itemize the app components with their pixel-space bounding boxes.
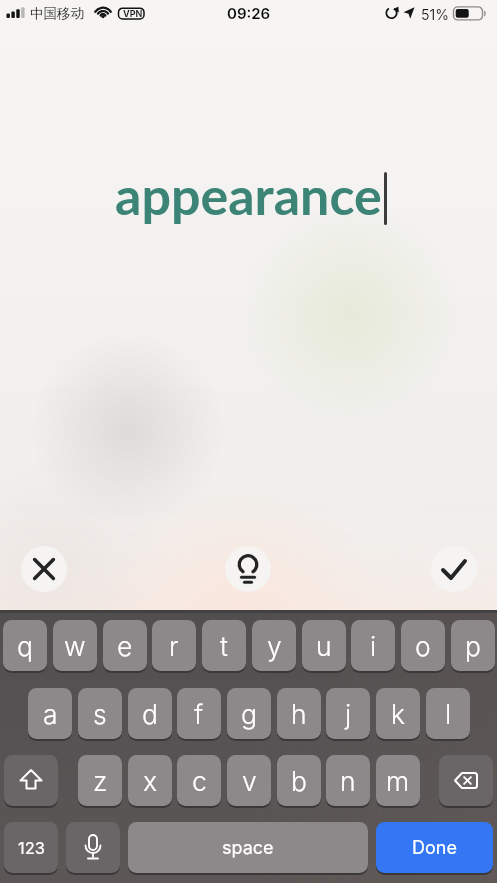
staticText: 51% (421, 6, 449, 23)
staticText: l (445, 698, 452, 730)
staticText: q (17, 630, 33, 662)
staticText: y (267, 630, 282, 662)
button[interactable]: y (252, 620, 296, 671)
staticText: 123 (18, 838, 45, 858)
button[interactable]: t (202, 620, 246, 671)
staticText: v (242, 765, 257, 797)
button[interactable]: v (227, 755, 271, 806)
button[interactable] (225, 546, 271, 592)
staticText: s (93, 698, 107, 730)
button[interactable]: k (376, 688, 420, 739)
staticText: 09:26 (227, 4, 271, 22)
staticText: 中国移动 (30, 5, 84, 22)
button[interactable] (431, 546, 477, 592)
button[interactable] (4, 755, 58, 806)
button[interactable]: m (376, 755, 420, 806)
staticText: h (291, 698, 307, 730)
button[interactable]: j (326, 688, 370, 739)
button[interactable]: p (451, 620, 495, 671)
button[interactable]: x (128, 755, 172, 806)
button[interactable]: l (426, 688, 470, 739)
staticText: p (465, 630, 481, 662)
button[interactable]: g (227, 688, 271, 739)
staticText: z (93, 765, 108, 797)
button[interactable]: 123 (4, 822, 58, 873)
button[interactable]: q (3, 620, 47, 671)
staticText: o (415, 630, 431, 662)
staticText: f (194, 698, 204, 730)
button[interactable]: h (277, 688, 321, 739)
staticText: appearance (115, 164, 382, 224)
button[interactable]: b (277, 755, 321, 806)
staticText: t (220, 630, 228, 662)
button[interactable]: u (302, 620, 346, 671)
button[interactable]: d (128, 688, 172, 739)
staticText: k (391, 698, 406, 730)
button[interactable]: z (78, 755, 122, 806)
button[interactable]: Done (376, 822, 493, 873)
button[interactable] (21, 546, 67, 592)
button[interactable]: s (78, 688, 122, 739)
staticText: u (316, 630, 332, 662)
button[interactable]: w (53, 620, 97, 671)
staticText: space (222, 837, 274, 859)
staticText: VPN (123, 8, 143, 19)
staticText: r (169, 630, 179, 662)
staticText: d (142, 698, 158, 730)
staticText: b (291, 765, 307, 797)
staticText: j (345, 698, 352, 730)
staticText: w (64, 630, 86, 662)
button[interactable] (439, 755, 493, 806)
staticText: a (43, 698, 58, 730)
button[interactable]: c (177, 755, 221, 806)
button[interactable]: a (28, 688, 72, 739)
staticText: i (370, 630, 377, 662)
staticText: m (386, 765, 410, 797)
button[interactable]: o (401, 620, 445, 671)
staticText: x (143, 765, 158, 797)
button[interactable]: e (103, 620, 147, 671)
button[interactable]: i (351, 620, 395, 671)
staticText: Done (412, 837, 457, 859)
staticText: g (241, 698, 257, 730)
staticText: e (117, 630, 133, 662)
button[interactable]: space (128, 822, 368, 873)
staticText: c (192, 765, 207, 797)
button[interactable]: r (152, 620, 196, 671)
button[interactable]: n (326, 755, 370, 806)
button[interactable]: f (177, 688, 221, 739)
button[interactable] (66, 822, 120, 873)
staticText: n (340, 765, 356, 797)
